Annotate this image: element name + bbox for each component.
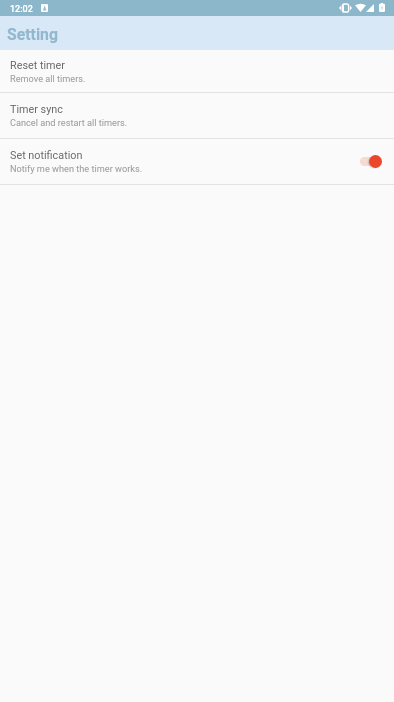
staticText: Remove all timers.	[10, 73, 86, 84]
button[interactable]: Set notification	[0, 139, 394, 184]
staticText: Notify me when the timer works.	[10, 163, 143, 174]
staticText: Cancel and restart all timers.	[10, 117, 128, 128]
button[interactable]: Timer sync	[0, 93, 394, 138]
button[interactable]: Toggle set notification	[352, 149, 382, 173]
staticText: 12:02	[10, 4, 33, 15]
staticText: Timer sync	[10, 103, 63, 116]
staticText: Setting	[7, 25, 58, 44]
button[interactable]: Reset timer	[0, 50, 394, 92]
staticText: Set notification	[10, 149, 83, 162]
staticText: Reset timer	[10, 59, 65, 72]
